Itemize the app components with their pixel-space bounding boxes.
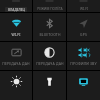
button[interactable]: ПЕРЕДАЧА ДАН (33, 42, 66, 70)
staticText: РЕЖИМ ПОЛЁТА (37, 7, 63, 11)
staticText: ПРОФИЛИ ЗВУ (70, 61, 97, 66)
staticText: BLUETOOTH (39, 32, 61, 37)
button[interactable]: WI-FI (0, 13, 32, 41)
staticText: WI-FI (11, 32, 21, 37)
button[interactable]: GPS (67, 13, 100, 41)
button[interactable]: ПРОФИЛИ ЗВУ (67, 42, 100, 70)
button[interactable]: РЕЖИМ ПОЛЁТА (33, 0, 66, 12)
button[interactable]: WI-FI (67, 0, 100, 12)
staticText: WI-FI (80, 7, 88, 11)
staticText: ВЛАДЕЛЕЦ (8, 8, 25, 12)
staticText: ПЕРЕДАЧА ДАН (36, 61, 64, 66)
button[interactable]: Яркость (0, 71, 32, 100)
staticText: GPS (80, 32, 87, 37)
staticText: ПЕРЕДАЧА ДАН (2, 61, 30, 66)
button[interactable]: Фонарик (33, 71, 66, 100)
button[interactable]: ПЕРЕДАЧА ДАН (0, 42, 32, 70)
button[interactable]: ВЛАДЕЛЕЦ (0, 0, 32, 12)
button[interactable]: BLUETOOTH (33, 13, 66, 41)
button[interactable]: Трансляция экрана (67, 71, 100, 100)
